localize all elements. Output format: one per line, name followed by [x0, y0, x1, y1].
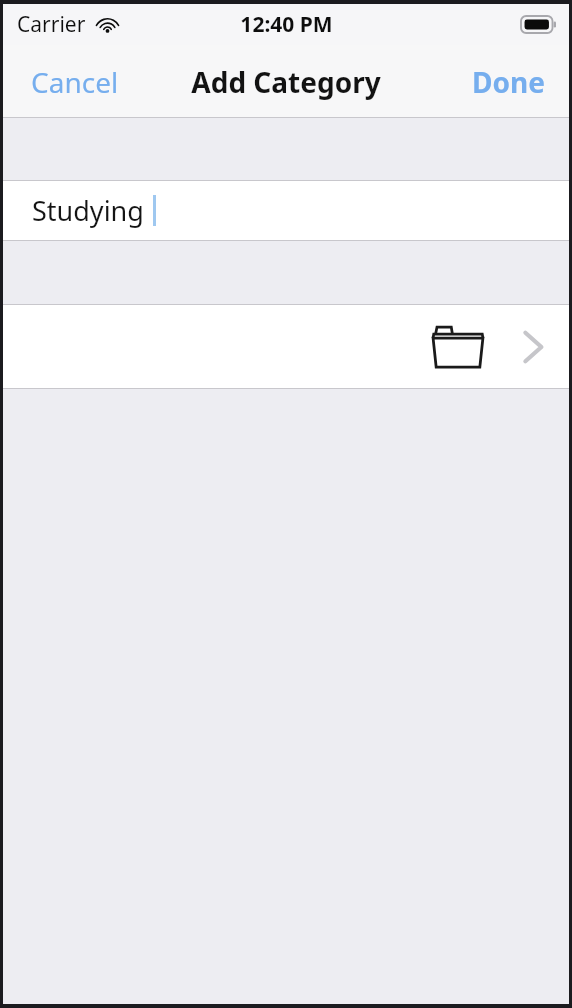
- button[interactable]: Studying: [3, 181, 569, 240]
- button[interactable]: Cancel: [3, 53, 133, 111]
- staticText: Carrier: [17, 10, 86, 39]
- staticText: Done: [472, 63, 545, 101]
- staticText: Studying: [32, 192, 144, 229]
- button[interactable]: Choose folder icon: [3, 305, 569, 388]
- staticText: Add Category: [191, 63, 381, 101]
- staticText: 12:40 PM: [240, 10, 333, 39]
- button[interactable]: Done: [458, 53, 569, 111]
- staticText: Cancel: [31, 63, 119, 101]
- other: Open: [523, 330, 543, 364]
